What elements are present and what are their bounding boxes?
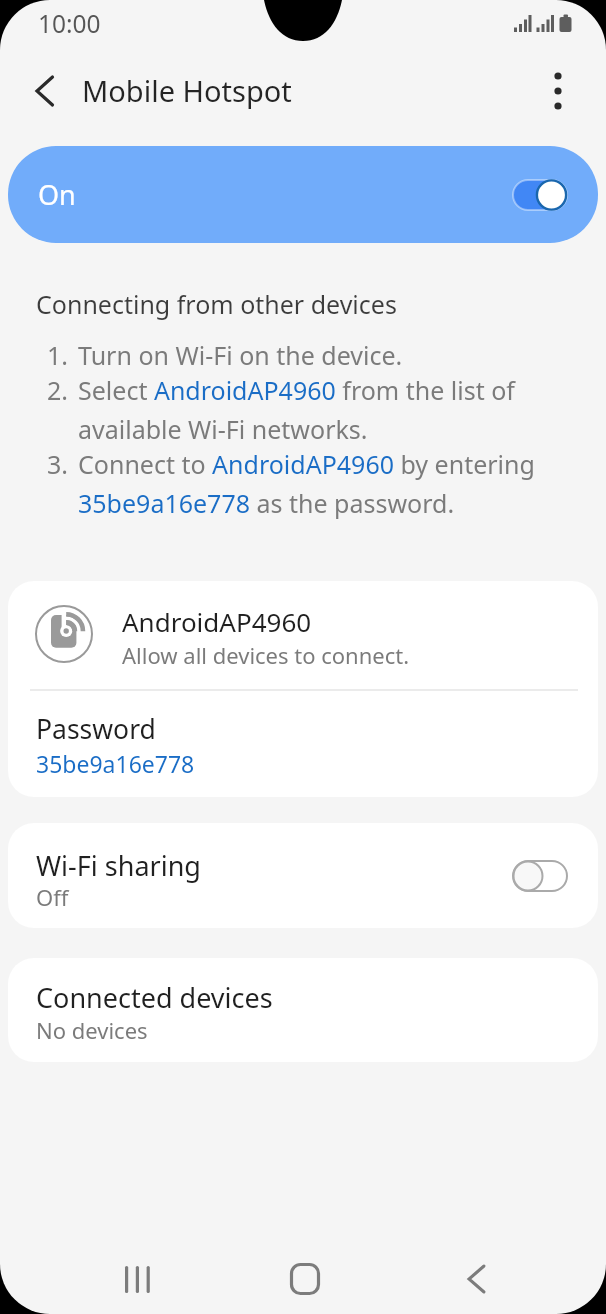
button[interactable] <box>24 72 64 112</box>
staticText: 1. <box>47 338 69 372</box>
staticText: Off <box>36 882 69 912</box>
button[interactable] <box>511 858 569 894</box>
staticText: Turn on Wi-Fi on the device. <box>78 338 403 372</box>
staticText: Connected devices <box>36 979 273 1016</box>
button[interactable] <box>107 1249 167 1309</box>
staticText: 3. <box>47 447 69 481</box>
staticText: Allow all devices to connect. <box>122 640 410 670</box>
staticText: Password <box>36 711 156 747</box>
button[interactable] <box>275 1249 335 1309</box>
staticText: No devices <box>36 1015 148 1045</box>
button[interactable]: Wi-Fi sharing <box>8 823 598 928</box>
staticText: Wi-Fi sharing <box>36 847 201 884</box>
button[interactable] <box>8 581 598 689</box>
button[interactable] <box>540 68 578 114</box>
button[interactable] <box>446 1249 506 1309</box>
staticText: Mobile Hotspot <box>82 71 292 110</box>
staticText: 10:00 <box>38 7 101 40</box>
button[interactable] <box>511 177 569 213</box>
staticText: 2. <box>47 373 69 407</box>
button[interactable]: On <box>8 146 598 243</box>
staticText: AndroidAP4960 <box>122 604 312 639</box>
button[interactable] <box>8 691 598 797</box>
staticText: 35be9a16e778 <box>36 748 195 779</box>
staticText: Connecting from other devices <box>36 287 397 321</box>
button[interactable]: Connected devices <box>8 958 598 1062</box>
staticText: Select AndroidAP4960 from the list of av… <box>78 373 515 446</box>
staticText: On <box>38 176 76 213</box>
staticText: Connect to AndroidAP4960 by entering 35b… <box>78 447 535 520</box>
